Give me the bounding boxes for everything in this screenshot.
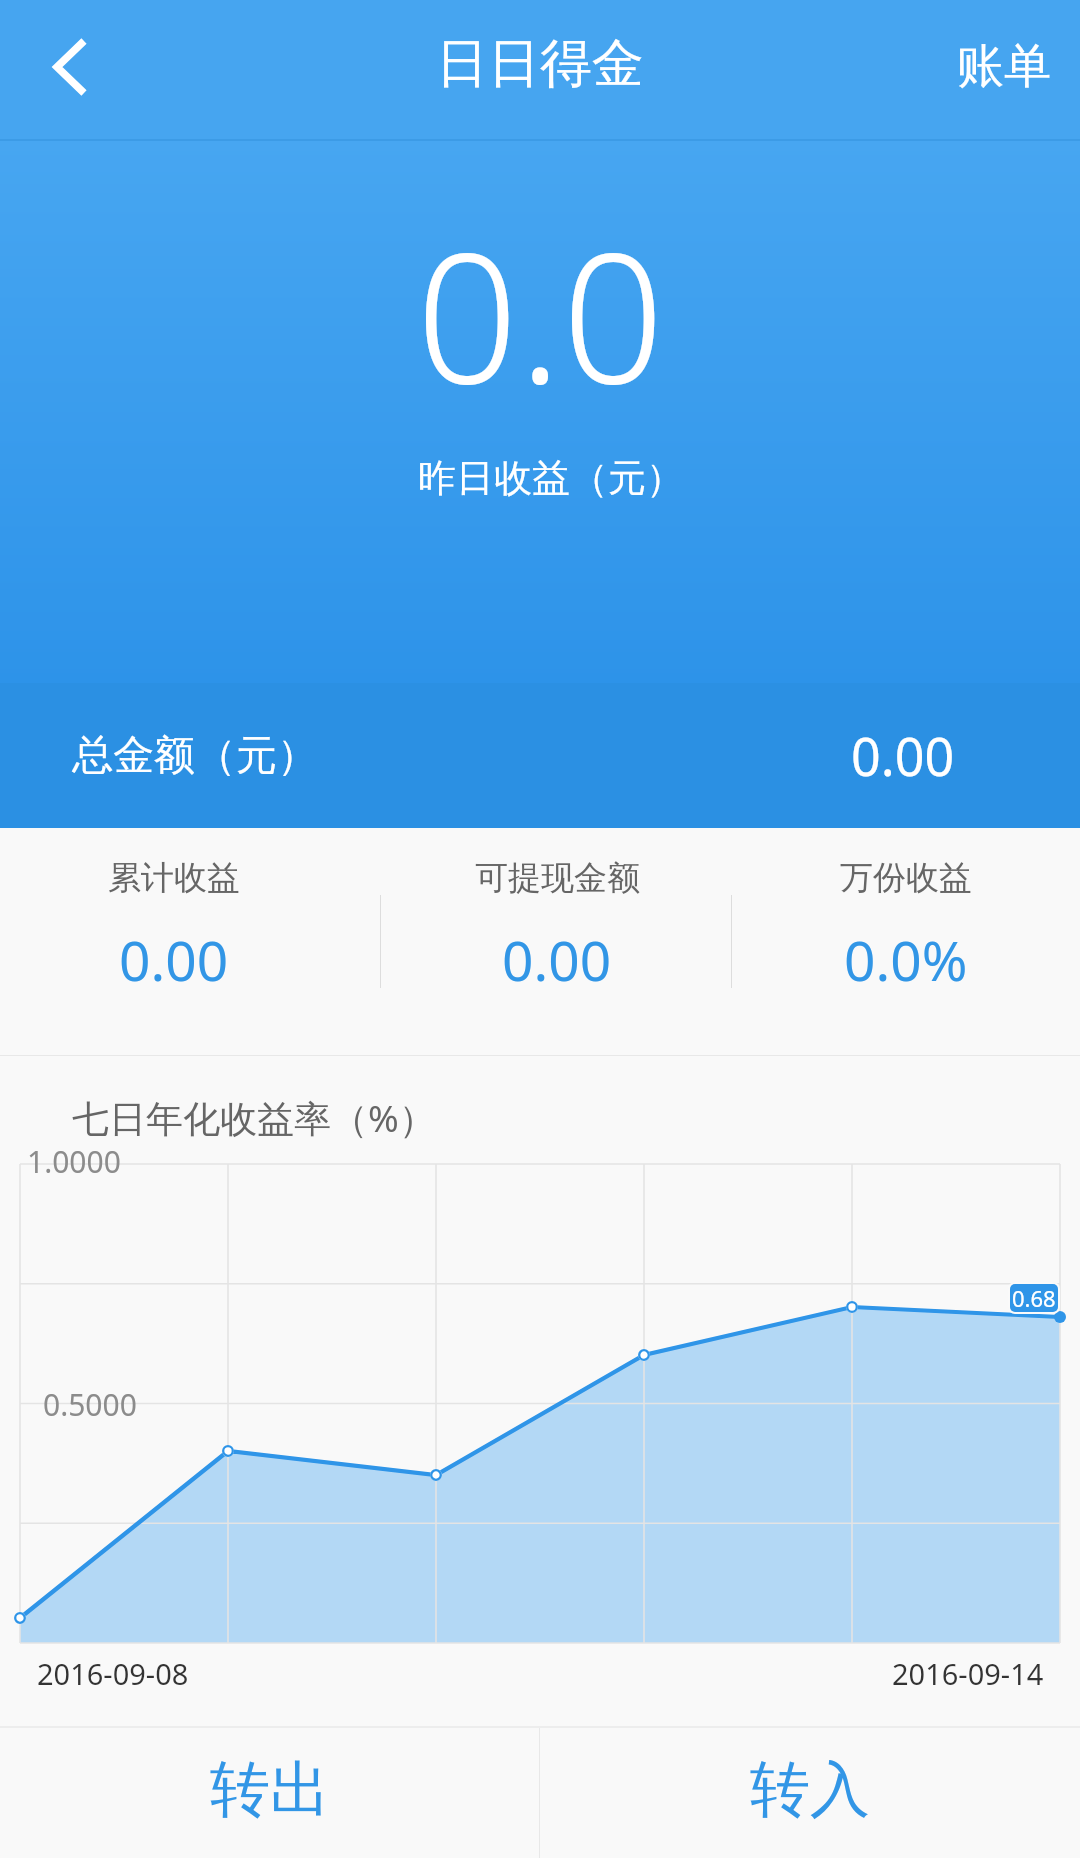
staticText: 七日年化收益率（%） <box>72 1092 436 1143</box>
staticText: 0.0 <box>416 192 665 436</box>
staticText: 0.68 <box>1012 1284 1056 1311</box>
staticText: 转入 <box>750 1752 870 1828</box>
staticText: 0.5000 <box>43 1384 137 1425</box>
staticText: 1.0000 <box>27 1141 121 1182</box>
staticText: 万份收益 <box>840 857 972 899</box>
button[interactable]: 总金额（元） <box>0 683 1080 828</box>
staticText: 总金额（元） <box>72 730 318 782</box>
button[interactable]: 累计收益 <box>0 828 380 1055</box>
staticText: 日日得金 <box>436 31 644 97</box>
button[interactable]: 万份收益 <box>732 828 1080 1055</box>
button[interactable]: 账单 <box>927 0 1080 141</box>
staticText: 0.00 <box>851 720 955 791</box>
staticText: 可提现金额 <box>475 857 640 899</box>
staticText: 2016-09-14 <box>892 1654 1044 1693</box>
button[interactable]: 转出 <box>0 1728 539 1858</box>
button[interactable]: 转入 <box>540 1728 1080 1858</box>
staticText: 0.0% <box>844 922 968 997</box>
staticText: 0.00 <box>119 922 229 997</box>
staticText: 账单 <box>957 37 1051 96</box>
staticText: 转出 <box>210 1752 330 1828</box>
staticText: 0.00 <box>502 922 612 997</box>
button[interactable]: Back <box>0 0 140 141</box>
staticText: 昨日收益（元） <box>418 454 684 502</box>
staticText: 2016-09-08 <box>37 1654 189 1693</box>
button[interactable]: 可提现金额 <box>381 828 731 1055</box>
staticText: 累计收益 <box>108 857 240 899</box>
